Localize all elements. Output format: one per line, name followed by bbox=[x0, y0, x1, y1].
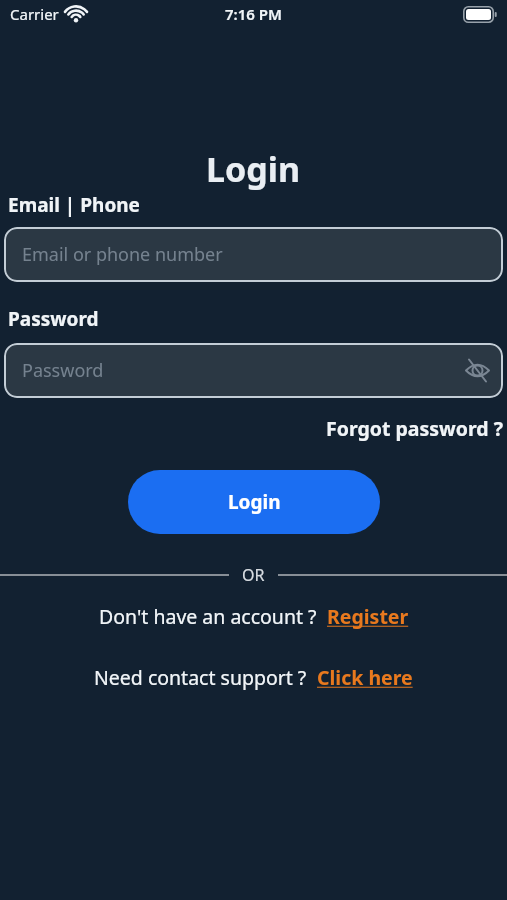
staticText: Email | Phone bbox=[8, 192, 140, 218]
staticText: Click here bbox=[317, 664, 413, 691]
staticText: Need contact support ? bbox=[94, 664, 317, 691]
staticText: Register bbox=[327, 603, 409, 630]
button[interactable]: Login bbox=[128, 470, 380, 534]
staticText: Don't have an account ? bbox=[99, 603, 327, 630]
staticText: Password bbox=[8, 306, 99, 332]
button[interactable]: Password bbox=[4, 343, 503, 398]
staticText: Login bbox=[228, 489, 281, 515]
button[interactable]: Register bbox=[327, 603, 409, 630]
button[interactable]: Email or phone number bbox=[4, 227, 503, 282]
staticText: Email or phone number bbox=[22, 242, 223, 267]
staticText: Forgot password ? bbox=[326, 415, 503, 442]
staticText: Password bbox=[22, 358, 104, 383]
button[interactable]: Forgot password ? bbox=[326, 415, 507, 442]
staticText: Carrier bbox=[10, 4, 59, 24]
staticText: Login bbox=[206, 146, 301, 192]
staticText: 7:16 PM bbox=[225, 4, 282, 24]
staticText: OR bbox=[242, 564, 265, 586]
button[interactable]: Click here bbox=[317, 664, 413, 691]
